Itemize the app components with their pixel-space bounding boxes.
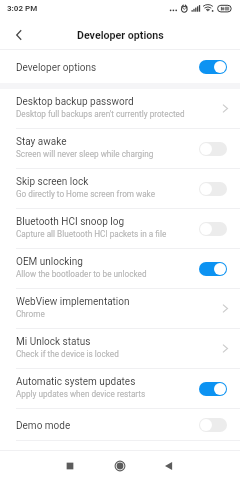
- staticText: Go directly to Home screen from wake: [16, 189, 156, 199]
- staticText: Desktop full backups aren't currently pr…: [16, 109, 185, 119]
- staticText: OEM unlocking: [16, 256, 83, 268]
- staticText: Stay awake: [16, 136, 67, 148]
- staticText: Check if the device is locked: [16, 349, 119, 359]
- staticText: WebView implementation: [16, 296, 130, 308]
- staticText: 3:02 PM: [7, 4, 38, 13]
- button[interactable]: Back: [145, 451, 195, 480]
- button[interactable]: Automatic system updates: [0, 369, 240, 408]
- staticText: Screen will never sleep while charging: [16, 149, 154, 159]
- button[interactable]: Stay awake: [0, 129, 240, 168]
- staticText: Allow the bootloader to be unlocked: [16, 269, 147, 279]
- staticText: Bluetooth HCI snoop log: [16, 216, 125, 228]
- button[interactable]: Mi Unlock status: [0, 329, 240, 368]
- staticText: Demo mode: [16, 420, 71, 432]
- button[interactable]: Skip screen lock: [0, 169, 240, 208]
- staticText: Developer options: [77, 29, 164, 41]
- staticText: Developer options: [16, 62, 97, 74]
- button[interactable]: WebView implementation: [0, 289, 240, 328]
- button[interactable]: Back: [0, 20, 37, 50]
- button[interactable]: Recent apps: [45, 451, 95, 480]
- staticText: Apply updates when device restarts: [16, 389, 146, 399]
- staticText: Skip screen lock: [16, 176, 89, 188]
- staticText: Automatic system updates: [16, 376, 136, 388]
- button[interactable]: Demo mode: [0, 409, 240, 440]
- staticText: Chrome: [16, 309, 45, 319]
- staticText: Desktop backup password: [16, 96, 134, 108]
- button[interactable]: OEM unlocking: [0, 249, 240, 288]
- button[interactable]: Bluetooth HCI snoop log: [0, 209, 240, 248]
- staticText: Mi Unlock status: [16, 336, 91, 348]
- button[interactable]: Home: [95, 451, 145, 480]
- button[interactable]: Developer options: [0, 50, 240, 83]
- staticText: Capture all Bluetooth HCI packets in a f…: [16, 229, 167, 239]
- button[interactable]: Desktop backup password: [0, 89, 240, 128]
